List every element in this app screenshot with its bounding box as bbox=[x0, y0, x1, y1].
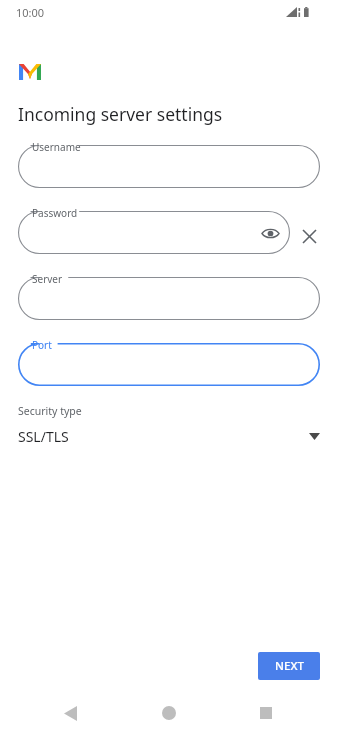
staticText: Server bbox=[32, 272, 63, 286]
button[interactable]: Password bbox=[18, 211, 290, 254]
button[interactable]: Show password bbox=[258, 221, 282, 245]
staticText: SSL/TLS bbox=[18, 427, 69, 446]
staticText: NEXT bbox=[275, 658, 304, 674]
staticText: 10:00 bbox=[16, 5, 45, 20]
staticText: Username bbox=[32, 140, 81, 154]
other: Open security type menu bbox=[309, 433, 320, 440]
button[interactable]: Recent apps bbox=[252, 699, 280, 727]
button[interactable]: Port bbox=[18, 343, 320, 386]
button[interactable]: Home bbox=[155, 699, 183, 727]
staticText: Password bbox=[32, 206, 78, 220]
staticText: Port bbox=[32, 338, 52, 352]
button[interactable]: Username bbox=[18, 145, 320, 188]
button[interactable]: Clear password bbox=[298, 225, 320, 247]
button[interactable]: Security type bbox=[18, 404, 320, 446]
button[interactable]: Server bbox=[18, 277, 320, 320]
staticText: Incoming server settings bbox=[18, 102, 223, 126]
button[interactable]: NEXT bbox=[258, 652, 320, 680]
staticText: Security type bbox=[18, 404, 82, 418]
button[interactable]: Back bbox=[56, 699, 84, 727]
